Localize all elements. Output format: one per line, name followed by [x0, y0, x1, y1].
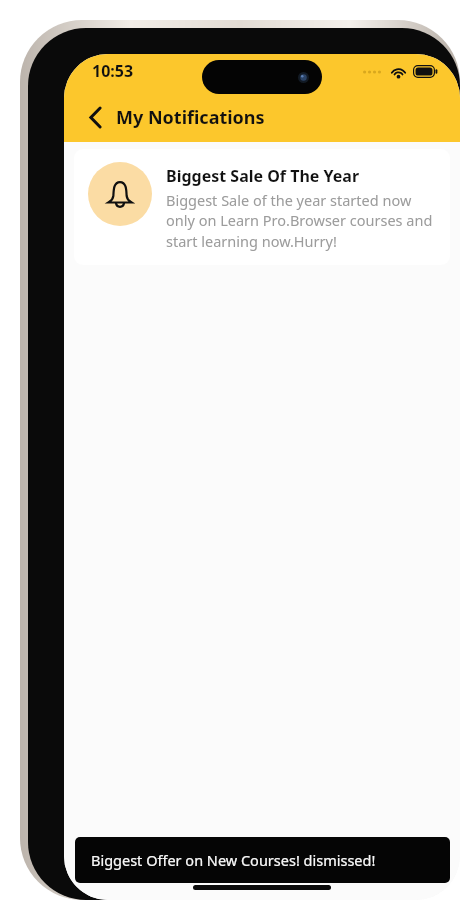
button[interactable]: Back	[78, 100, 112, 134]
staticText: Biggest Offer on New Courses! dismissed!	[91, 850, 376, 870]
staticText: My Notifications	[116, 105, 265, 130]
staticText: Biggest Sale Of The Year	[166, 165, 360, 187]
staticText: Biggest Sale of the year started now onl…	[166, 190, 436, 252]
button[interactable]: Biggest Sale Of The Year	[74, 149, 450, 265]
staticText: 10:53	[92, 60, 134, 82]
button[interactable]: Biggest Offer on New Courses! dismissed!	[75, 837, 450, 883]
